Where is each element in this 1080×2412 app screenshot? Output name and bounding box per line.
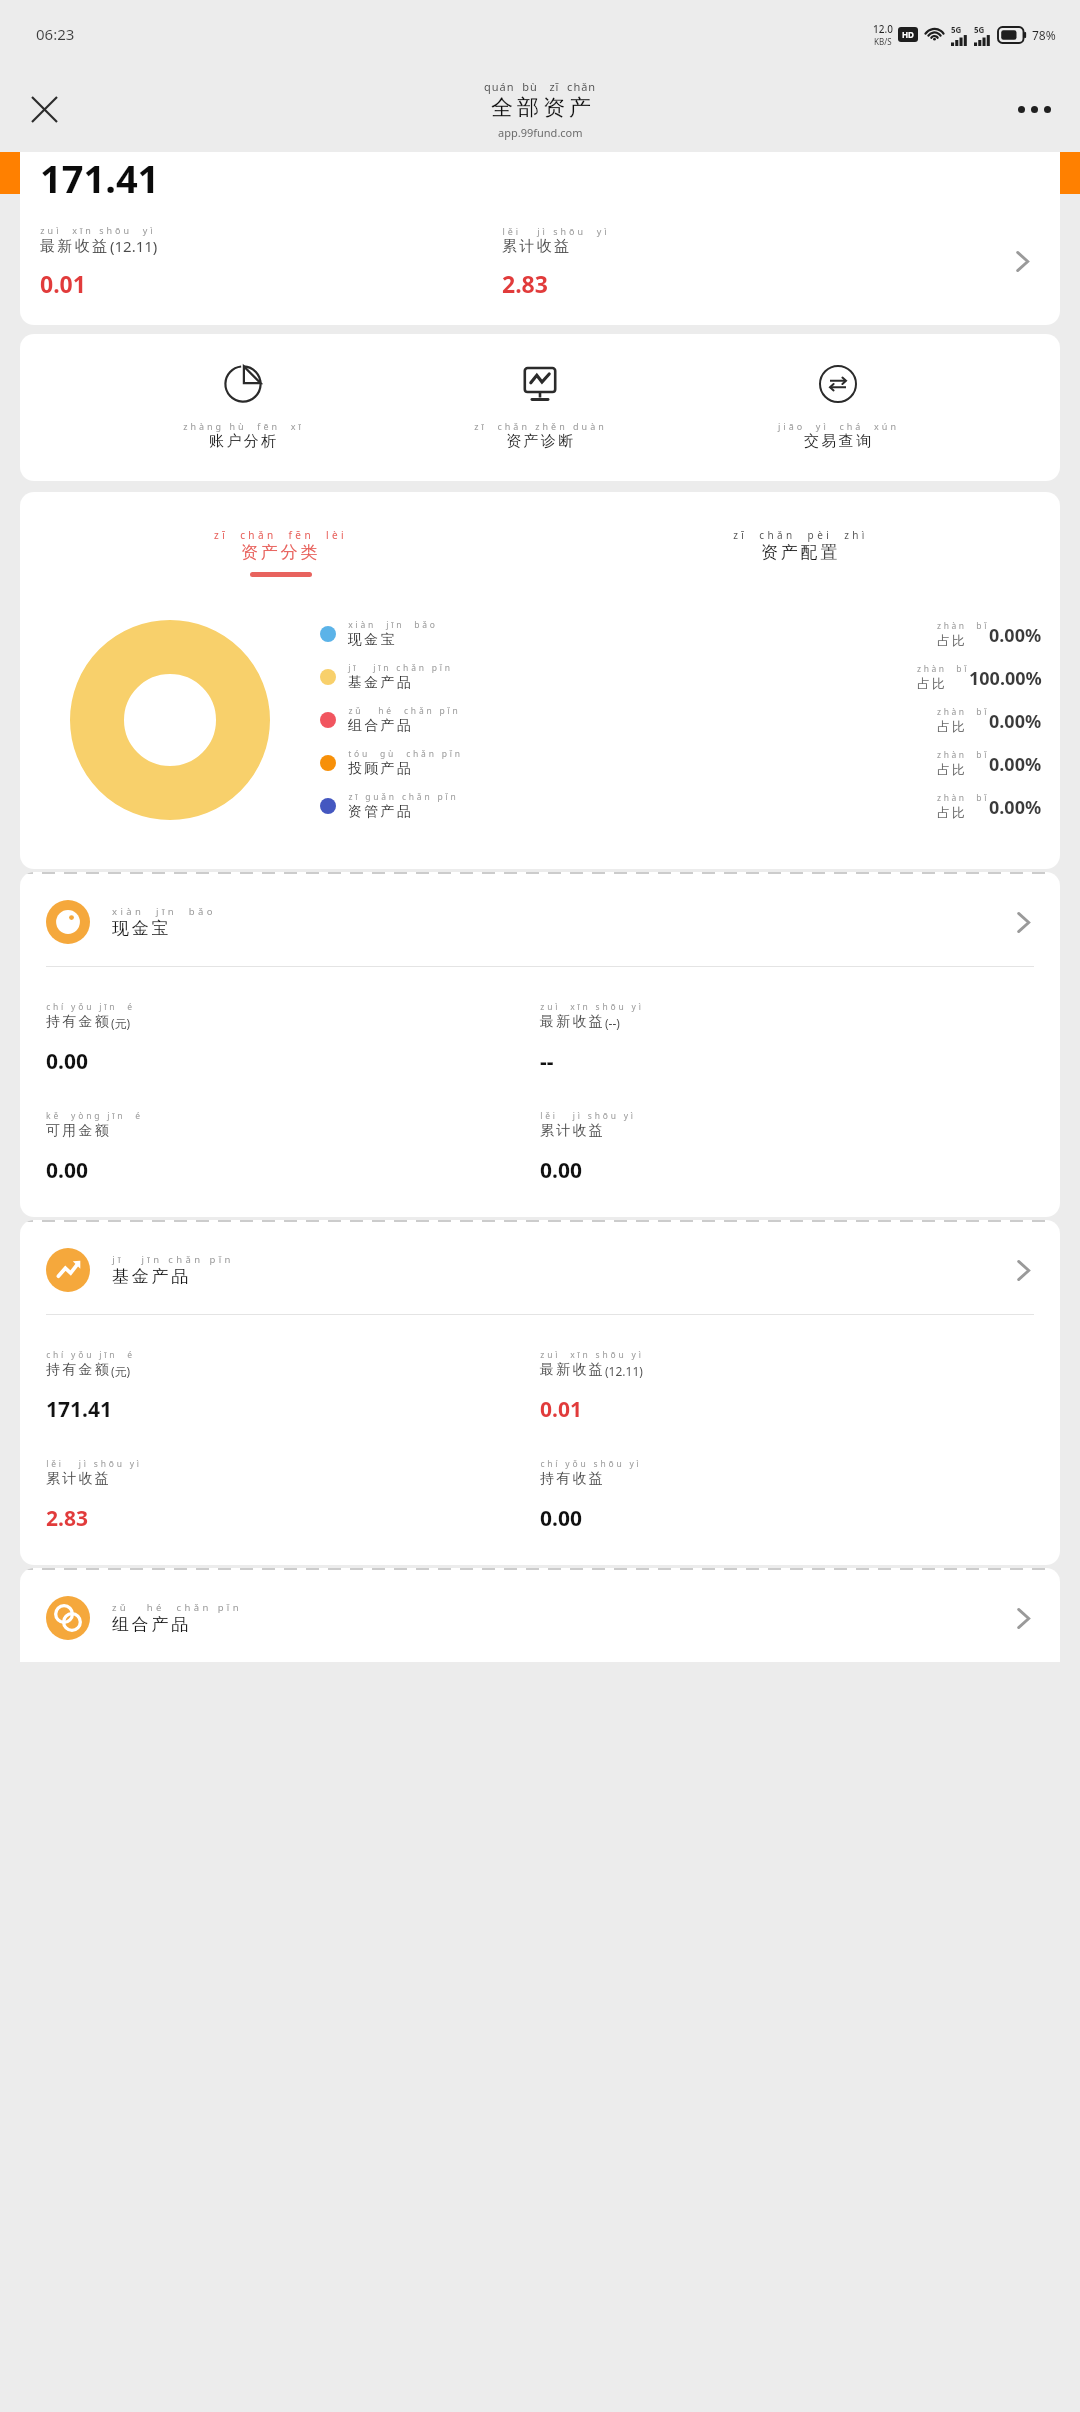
staticText: 现金宝 — [348, 631, 397, 649]
staticText: 100.00% — [969, 666, 1042, 691]
staticText: 5G — [974, 24, 985, 35]
staticText: zhàn bǐ — [937, 792, 989, 804]
staticText: 组合产品 — [348, 717, 413, 735]
staticText: zuì xīn shōu yì — [40, 224, 156, 236]
staticText: 交易查询 — [804, 432, 874, 451]
staticText: 全部资产 — [489, 94, 593, 122]
staticText: 现金宝 — [112, 918, 172, 939]
staticText: xiàn jīn bǎo — [348, 619, 438, 631]
staticText: zī guǎn chǎn pǐn — [348, 791, 459, 803]
button[interactable]: zī chǎn zhěn duàn — [465, 364, 615, 451]
staticText: 资产分类 — [241, 542, 320, 563]
staticText: 持有金额 — [46, 1361, 111, 1379]
staticText: 0.00% — [989, 709, 1042, 734]
button[interactable]: zǔ hé chǎn pǐn — [20, 1570, 1060, 1662]
staticText: (元) — [111, 1015, 131, 1031]
button[interactable]: Close — [16, 81, 72, 137]
staticText: 占比 — [917, 675, 948, 691]
staticText: 78% — [1032, 27, 1056, 43]
staticText: zuì xīn shōu yì — [540, 1001, 644, 1013]
staticText: jiāo yì chá xún — [778, 420, 899, 432]
staticText: zǔ hé chǎn pǐn — [348, 705, 461, 717]
staticText: lěi jì shōu yì — [540, 1110, 636, 1122]
staticText: -- — [540, 1047, 554, 1076]
staticText: zuì xīn shōu yì — [540, 1349, 644, 1361]
staticText: 累计收益 — [540, 1122, 605, 1140]
staticText: 12.0 — [873, 22, 893, 36]
button[interactable]: jī jīn chǎn pǐn — [20, 1222, 1060, 1314]
staticText: zī chǎn fēn lèi — [214, 528, 347, 542]
button[interactable]: zī guǎn chǎn pǐn — [320, 791, 1042, 821]
staticText: 占比 — [937, 761, 968, 777]
staticText: 投顾产品 — [348, 760, 413, 778]
staticText: chí yǒu jīn é — [46, 1349, 135, 1361]
staticText: tóu gù chǎn pǐn — [348, 748, 463, 760]
staticText: HD — [902, 29, 914, 40]
staticText: 5G — [951, 24, 962, 35]
staticText: zhàn bǐ — [917, 663, 969, 675]
staticText: zhàn bǐ — [937, 706, 989, 718]
staticText: 2.83 — [502, 268, 548, 299]
staticText: 171.41 — [46, 1395, 112, 1424]
staticText: 0.00% — [989, 752, 1042, 777]
staticText: 可用金额 — [46, 1122, 111, 1140]
staticText: 0.00% — [989, 795, 1042, 820]
staticText: 0.00 — [46, 1047, 88, 1076]
staticText: kě yòng jīn é — [46, 1110, 143, 1122]
staticText: 持有金额 — [46, 1013, 111, 1031]
staticText: 组合产品 — [112, 1614, 191, 1635]
staticText: 累计收益 — [46, 1470, 111, 1488]
staticText: 0.00 — [540, 1504, 582, 1533]
staticText: 占比 — [937, 804, 968, 820]
staticText: app.99fund.com — [498, 125, 583, 140]
button[interactable]: zī chǎn fēn lèi — [20, 528, 540, 577]
staticText: (--) — [605, 1015, 620, 1031]
button[interactable]: jī jīn chǎn pǐn — [320, 662, 1042, 692]
staticText: lěi jì shōu yì — [502, 225, 610, 237]
staticText: 资产诊断 — [506, 432, 576, 451]
button[interactable]: zǔ hé chǎn pǐn — [320, 705, 1042, 735]
staticText: chí yǒu jīn é — [46, 1001, 135, 1013]
staticText: 资管产品 — [348, 803, 413, 821]
staticText: 06:23 — [36, 24, 75, 44]
staticText: chí yǒu shōu yì — [540, 1458, 642, 1470]
button[interactable]: xiàn jīn bǎo — [20, 874, 1060, 966]
staticText: 持有收益 — [540, 1470, 605, 1488]
staticText: 0.01 — [40, 268, 86, 299]
staticText: lěi jì shōu yì — [46, 1458, 142, 1470]
button[interactable]: 171.41 — [20, 152, 1060, 325]
staticText: zī chǎn zhěn duàn — [474, 420, 607, 432]
staticText: 0.00% — [989, 623, 1042, 648]
staticText: 基金产品 — [348, 674, 413, 692]
button[interactable]: zhàng hù fēn xī — [168, 364, 318, 451]
staticText: xiàn jīn bǎo — [112, 905, 216, 918]
staticText: 占比 — [937, 632, 968, 648]
button[interactable]: zī chǎn pèi zhì — [540, 528, 1060, 577]
staticText: 0.00 — [46, 1156, 88, 1185]
button[interactable]: More options — [1006, 81, 1062, 137]
staticText: (12.11) — [605, 1363, 643, 1379]
staticText: zī chǎn pèi zhì — [733, 528, 868, 542]
staticText: zhàn bǐ — [937, 620, 989, 632]
staticText: KB/S — [874, 36, 892, 47]
button[interactable]: jiāo yì chá xún — [763, 364, 913, 451]
staticText: (元) — [111, 1363, 131, 1379]
staticText: 2.83 — [46, 1504, 88, 1533]
staticText: (12.11) — [110, 236, 158, 256]
staticText: 占比 — [937, 718, 968, 734]
staticText: jī jīn chǎn pǐn — [348, 662, 453, 674]
staticText: jī jīn chǎn pǐn — [112, 1253, 234, 1266]
staticText: 最新收益 — [40, 237, 110, 256]
staticText: 资产配置 — [761, 542, 840, 563]
staticText: 基金产品 — [112, 1266, 191, 1287]
staticText: 最新收益 — [540, 1361, 605, 1379]
staticText: 账户分析 — [209, 432, 279, 451]
button[interactable]: xiàn jīn bǎo — [320, 619, 1042, 649]
staticText: zǔ hé chǎn pǐn — [112, 1601, 242, 1614]
staticText: 累计收益 — [502, 237, 572, 256]
staticText: 0.01 — [540, 1395, 582, 1424]
staticText: zhàng hù fēn xī — [183, 420, 304, 432]
staticText: 171.41 — [40, 152, 160, 204]
staticText: 0.00 — [540, 1156, 582, 1185]
button[interactable]: tóu gù chǎn pǐn — [320, 748, 1042, 778]
